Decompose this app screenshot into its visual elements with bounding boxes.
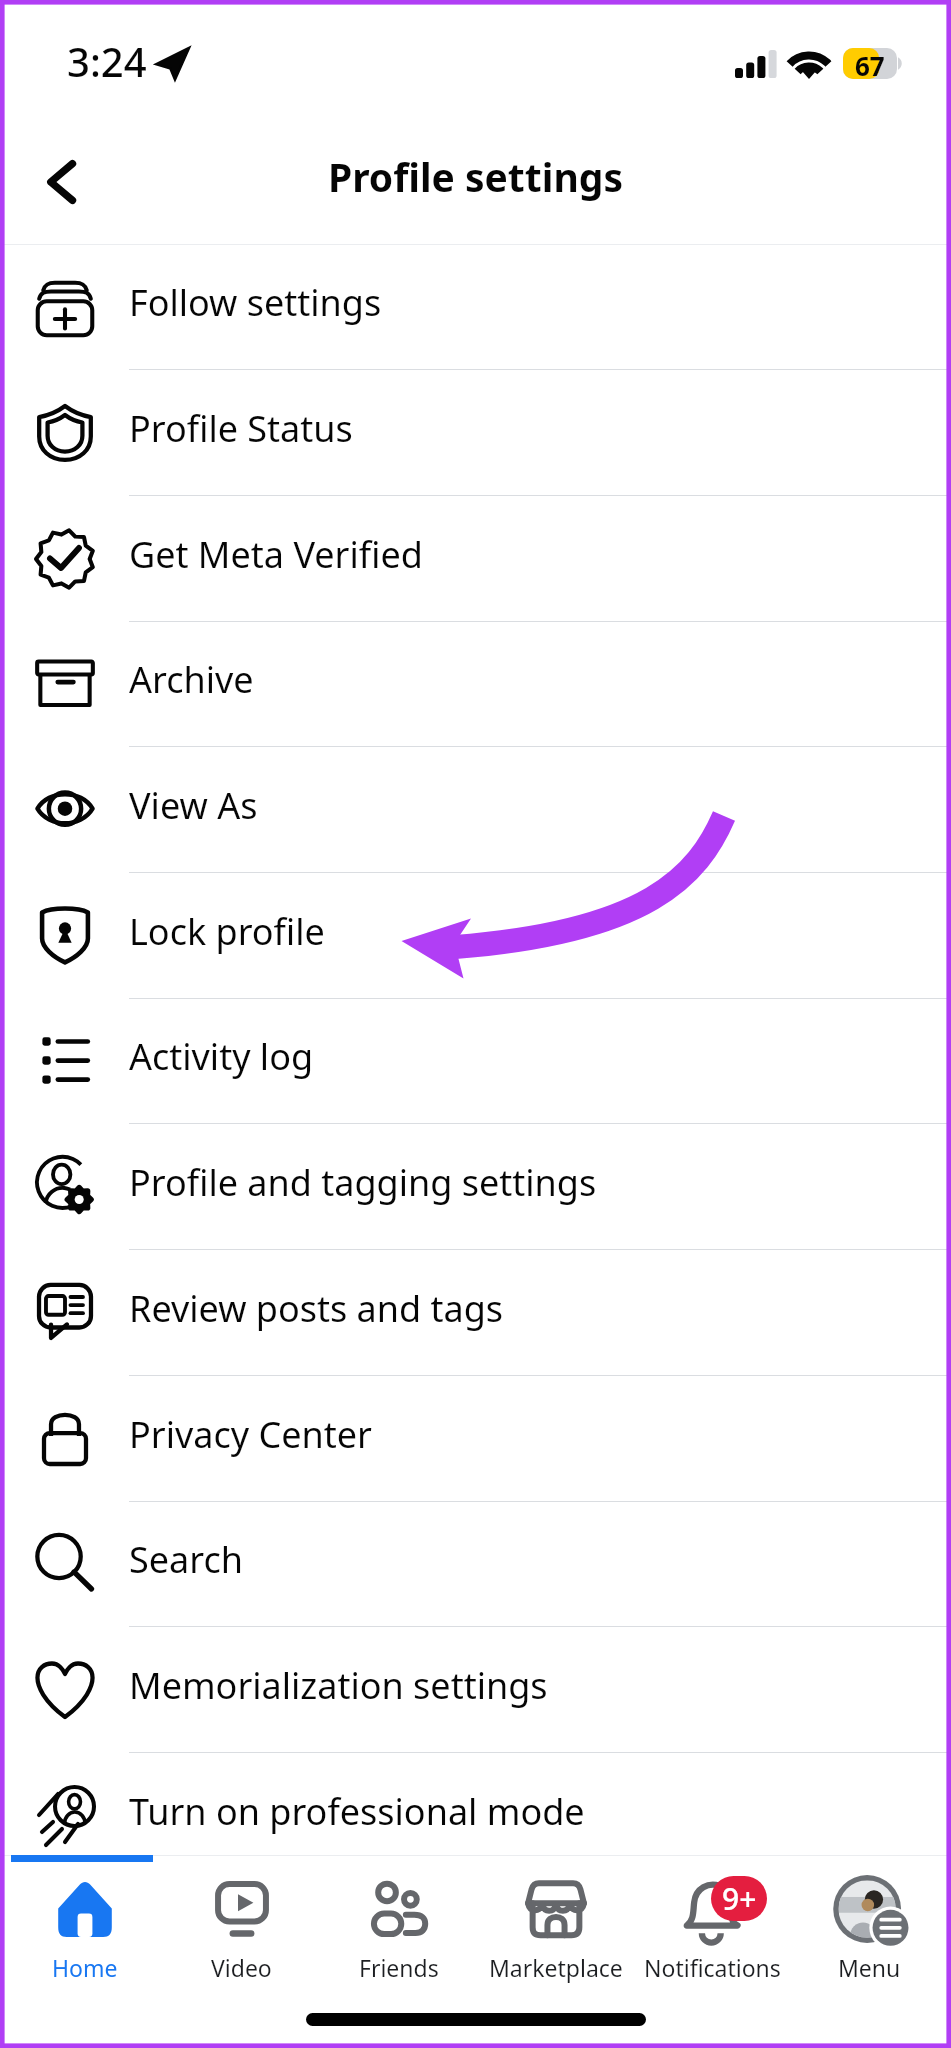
button[interactable]: Follow settings	[0, 245, 951, 370]
button[interactable]: Video	[163, 1872, 320, 1983]
button[interactable]: Lock profile	[0, 873, 951, 999]
button[interactable]: Profile and tagging settings	[0, 1124, 951, 1250]
staticText: Privacy Center	[129, 1410, 372, 1459]
button[interactable]: Home	[7, 1872, 163, 1983]
button[interactable]: Privacy Center	[0, 1376, 951, 1502]
button[interactable]: Profile Status	[0, 370, 951, 496]
button[interactable]: Menu	[791, 1872, 948, 1983]
staticText: Menu	[838, 1952, 901, 1983]
staticText: Memorialization settings	[129, 1661, 548, 1710]
staticText: Notifications	[644, 1952, 781, 1983]
staticText: Profile Status	[129, 404, 353, 453]
button[interactable]: Archive	[0, 622, 951, 747]
button[interactable]: Marketplace	[477, 1872, 634, 1983]
staticText: Turn on professional mode	[129, 1787, 585, 1836]
staticText: 9+	[722, 1878, 757, 1919]
button[interactable]: Friends	[320, 1872, 477, 1983]
staticText: Home	[52, 1952, 118, 1983]
staticText: 3:24	[67, 34, 147, 88]
staticText: Archive	[129, 655, 254, 704]
staticText: Video	[211, 1952, 272, 1983]
staticText: Search	[129, 1535, 243, 1584]
staticText: Activity log	[129, 1032, 314, 1081]
staticText: Profile and tagging settings	[129, 1158, 597, 1207]
staticText: Review posts and tags	[129, 1284, 504, 1333]
button[interactable]: Turn on professional mode	[0, 1753, 951, 1879]
staticText: Lock profile	[129, 907, 325, 956]
button[interactable]: Search	[0, 1502, 951, 1627]
staticText: View As	[129, 781, 258, 830]
staticText: Marketplace	[489, 1952, 623, 1983]
staticText: Get Meta Verified	[129, 530, 423, 579]
button[interactable]: Back	[22, 143, 100, 221]
staticText: Friends	[359, 1952, 439, 1983]
button[interactable]: Review posts and tags	[0, 1250, 951, 1376]
button[interactable]: View As	[0, 747, 951, 873]
staticText: 67	[855, 48, 885, 83]
button[interactable]: 9+	[634, 1872, 791, 1983]
staticText: Profile settings	[328, 150, 623, 203]
staticText: Follow settings	[129, 278, 382, 327]
button[interactable]: Activity log	[0, 999, 951, 1124]
button[interactable]: Memorialization settings	[0, 1627, 951, 1753]
button[interactable]: Get Meta Verified	[0, 496, 951, 622]
